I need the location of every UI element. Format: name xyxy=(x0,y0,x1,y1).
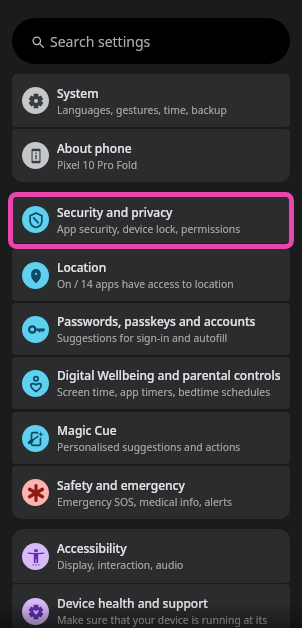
staticText: Magic Cue xyxy=(57,422,117,438)
staticText: Security and privacy xyxy=(57,204,173,220)
button[interactable]: Search settings xyxy=(12,18,290,64)
staticText: Digital Wellbeing and parental controls xyxy=(57,367,280,383)
staticText: App security, device lock, permissions xyxy=(57,222,241,236)
staticText: Make sure that your device is running at… xyxy=(57,613,268,627)
button[interactable]: Safety and emergency xyxy=(12,466,290,519)
staticText: On / 14 apps have access to location xyxy=(57,277,234,291)
staticText: Location xyxy=(57,259,107,275)
staticText: Emergency SOS, medical info, alerts xyxy=(57,495,232,509)
staticText: Device health and support xyxy=(57,595,208,611)
button[interactable]: Location xyxy=(12,249,290,301)
staticText: Pixel 10 Pro Fold xyxy=(57,158,138,172)
staticText: Display, interaction, audio xyxy=(57,558,184,572)
button[interactable]: Accessibility xyxy=(12,529,290,583)
button[interactable]: Passwords, passkeys and accounts xyxy=(12,303,290,355)
button[interactable]: System xyxy=(12,74,290,127)
staticText: About phone xyxy=(57,140,132,156)
button[interactable]: Security and privacy xyxy=(12,196,290,243)
staticText: Suggestions for sign-in and autofill xyxy=(57,331,228,345)
staticText: Safety and emergency xyxy=(57,477,185,493)
staticText: Screen time, app timers, bedtime schedul… xyxy=(57,385,271,399)
staticText: Accessibility xyxy=(57,540,127,556)
staticText: Passwords, passkeys and accounts xyxy=(57,313,256,329)
button[interactable]: Digital Wellbeing and parental controls xyxy=(12,357,290,409)
staticText: Search settings xyxy=(50,32,151,51)
staticText: Personalised suggestions and actions xyxy=(57,440,241,454)
button[interactable]: Magic Cue xyxy=(12,412,290,464)
staticText: Languages, gestures, time, backup xyxy=(57,103,227,117)
button[interactable]: Device health and support xyxy=(12,584,290,628)
staticText: System xyxy=(57,85,99,101)
button[interactable]: About phone xyxy=(12,129,290,182)
